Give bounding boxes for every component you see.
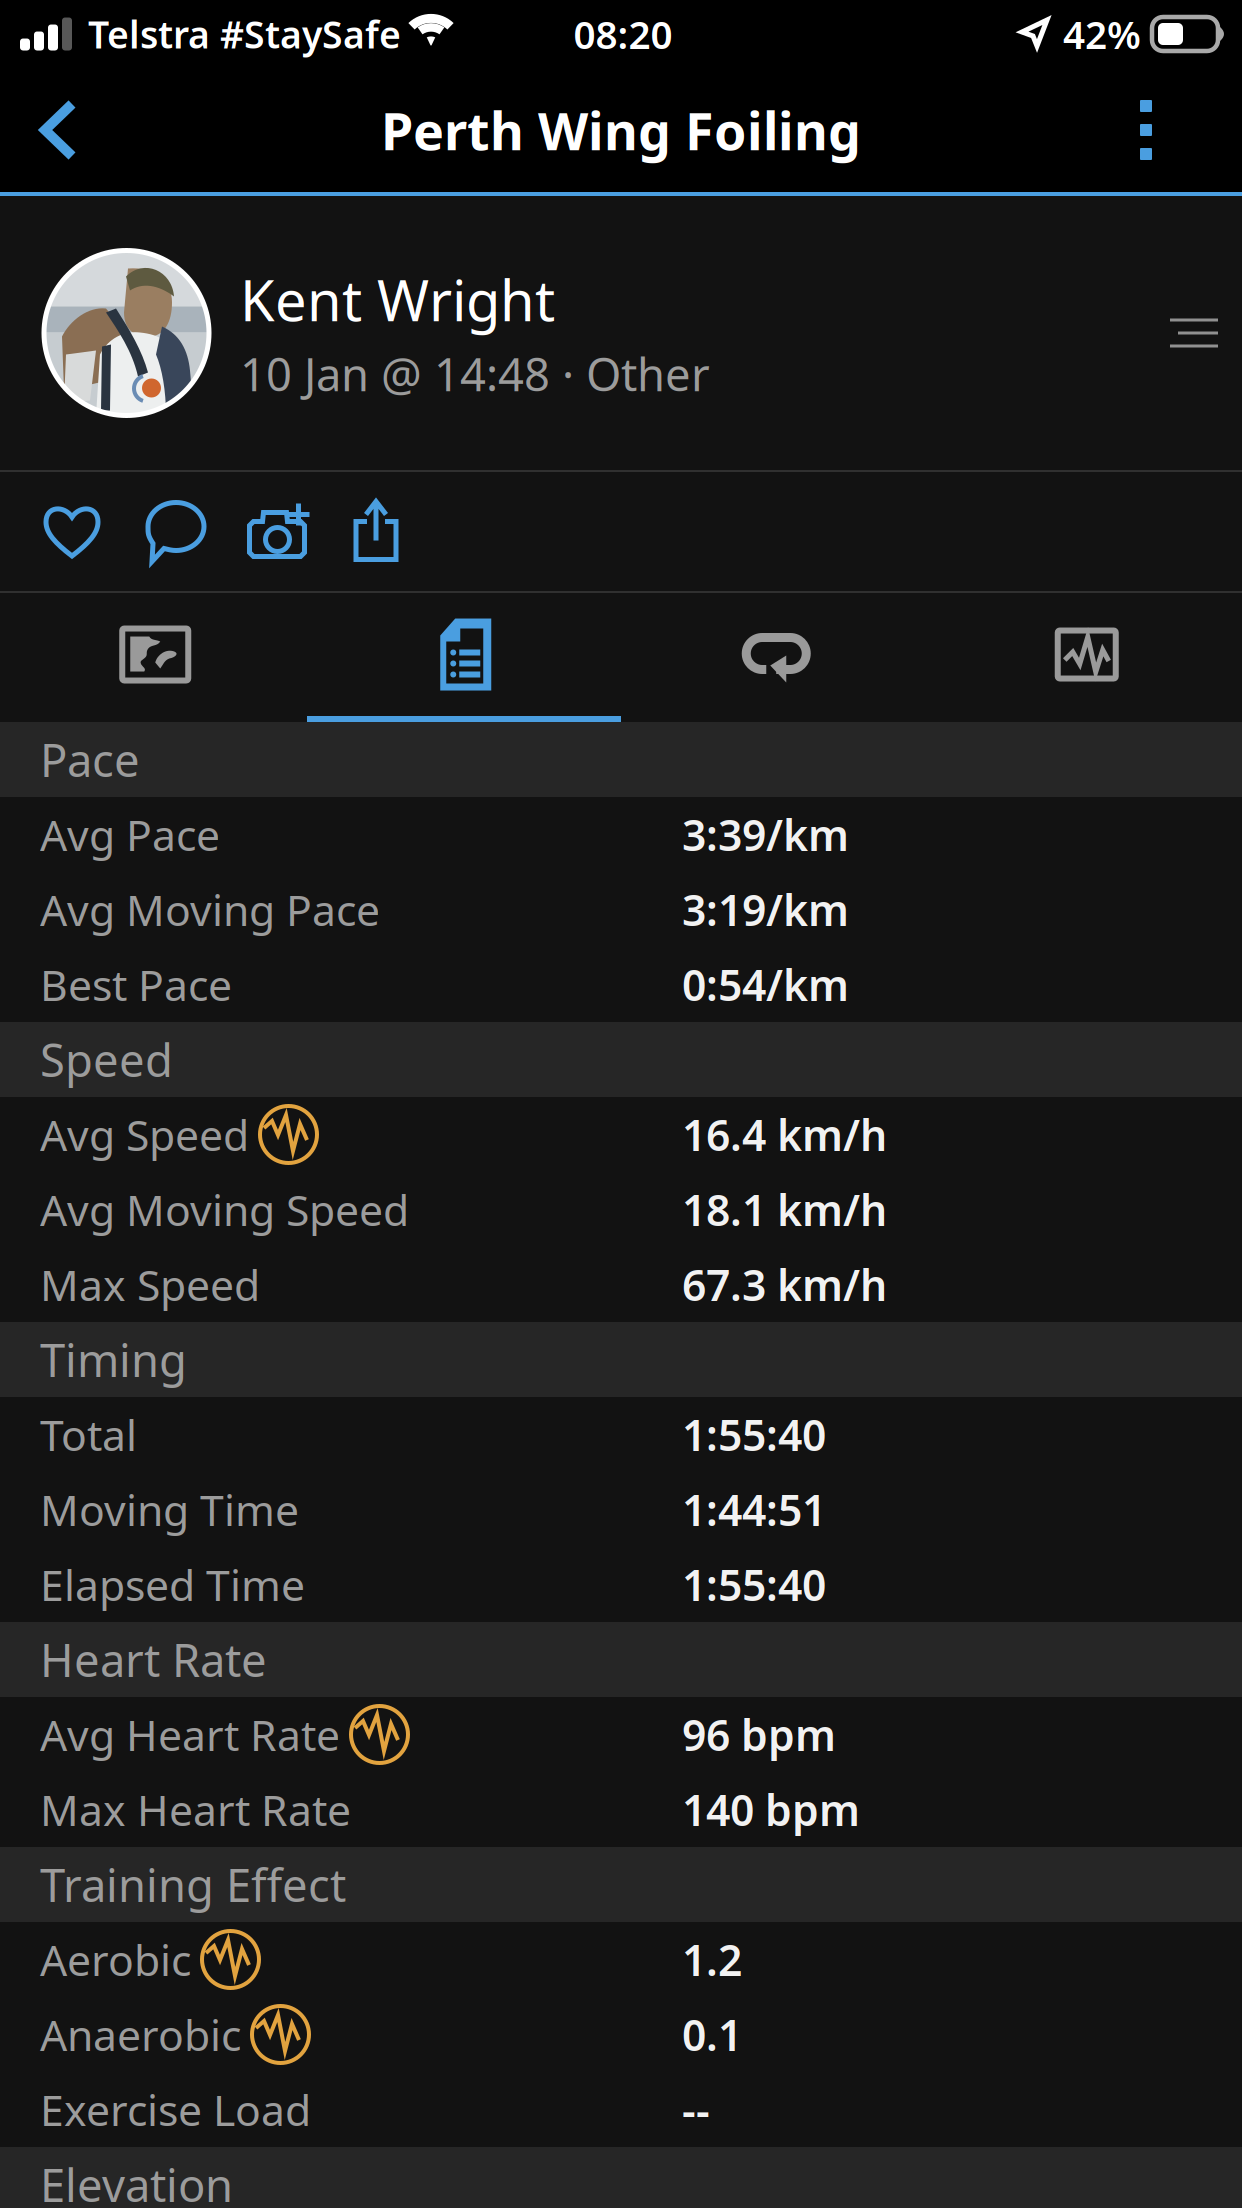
- button[interactable]: Anaerobic: [0, 1997, 1242, 2072]
- button[interactable]: Add photo: [228, 472, 327, 591]
- staticText: 3:39/km: [682, 806, 849, 863]
- staticText: 67.3 km/h: [682, 1256, 887, 1313]
- button[interactable]: Activity list: [1150, 289, 1238, 377]
- button[interactable]: Max Speed: [0, 1247, 1242, 1322]
- button[interactable]: Back: [0, 68, 118, 192]
- button[interactable]: Share: [327, 472, 425, 591]
- staticText: 16.4 km/h: [682, 1106, 887, 1163]
- button[interactable]: Moving Time: [0, 1472, 1242, 1547]
- button[interactable]: Laps: [621, 593, 931, 716]
- staticText: Anaerobic: [40, 2006, 241, 2063]
- staticText: 0.1: [682, 2006, 742, 2063]
- staticText: Avg Speed: [40, 1106, 249, 1163]
- staticText: Telstra #StaySafe: [88, 9, 401, 59]
- button[interactable]: Avg Moving Speed: [0, 1172, 1242, 1247]
- staticText: Avg Moving Speed: [40, 1181, 409, 1238]
- staticText: Speed: [40, 1029, 173, 1090]
- staticText: Max Heart Rate: [40, 1781, 351, 1838]
- button[interactable]: Avg Moving Pace: [0, 872, 1242, 947]
- staticText: Kent Wright: [240, 262, 555, 337]
- staticText: Elapsed Time: [40, 1556, 305, 1613]
- staticText: Pace: [40, 729, 140, 790]
- staticText: Total: [40, 1406, 137, 1463]
- staticText: --: [682, 2081, 710, 2138]
- button[interactable]: Best Pace: [0, 947, 1242, 1022]
- button[interactable]: Total: [0, 1397, 1242, 1472]
- button[interactable]: More options: [1050, 68, 1242, 192]
- staticText: 18.1 km/h: [682, 1181, 887, 1238]
- button[interactable]: Avg Pace: [0, 797, 1242, 872]
- staticText: Exercise Load: [40, 2081, 311, 2138]
- staticText: Timing: [40, 1329, 187, 1390]
- staticText: Avg Heart Rate: [40, 1706, 340, 1763]
- staticText: 3:19/km: [682, 881, 849, 938]
- staticText: 140 bpm: [682, 1781, 860, 1838]
- staticText: Avg Pace: [40, 806, 220, 863]
- button[interactable]: Aerobic: [0, 1922, 1242, 1997]
- staticText: Training Effect: [40, 1854, 346, 1915]
- button[interactable]: Avg Heart Rate: [0, 1697, 1242, 1772]
- button[interactable]: Details: [310, 593, 621, 716]
- staticText: 42%: [1063, 8, 1141, 60]
- staticText: Elevation: [40, 2154, 233, 2208]
- button[interactable]: Elapsed Time: [0, 1547, 1242, 1622]
- staticText: Perth Wing Foiling: [381, 95, 861, 165]
- staticText: 1.2: [682, 1931, 742, 1988]
- button[interactable]: Comment: [124, 472, 228, 591]
- staticText: Moving Time: [40, 1481, 299, 1538]
- staticText: 1:55:40: [682, 1406, 826, 1463]
- button[interactable]: Max Heart Rate: [0, 1772, 1242, 1847]
- staticText: Aerobic: [40, 1931, 191, 1988]
- button[interactable]: Like: [20, 472, 124, 591]
- button[interactable]: Map: [0, 593, 310, 716]
- staticText: 1:55:40: [682, 1556, 826, 1613]
- staticText: 96 bpm: [682, 1706, 836, 1763]
- staticText: Avg Moving Pace: [40, 881, 380, 938]
- staticText: 0:54/km: [682, 956, 849, 1013]
- button[interactable]: Exercise Load: [0, 2072, 1242, 2147]
- staticText: 1:44:51: [682, 1481, 826, 1538]
- staticText: 10 Jan @ 14:48 · Other: [240, 344, 710, 404]
- staticText: Best Pace: [40, 956, 232, 1013]
- button[interactable]: Charts: [931, 593, 1242, 716]
- staticText: 08:20: [573, 8, 672, 60]
- staticText: Heart Rate: [40, 1629, 267, 1690]
- staticText: Max Speed: [40, 1256, 260, 1313]
- button[interactable]: Avg Speed: [0, 1097, 1242, 1172]
